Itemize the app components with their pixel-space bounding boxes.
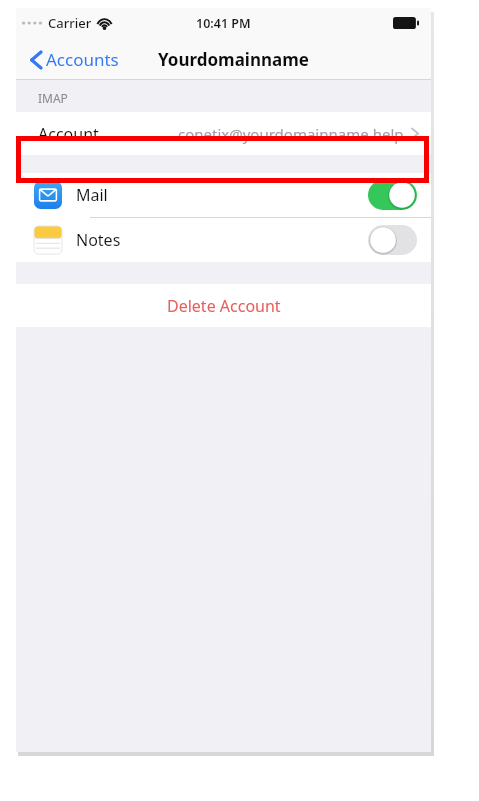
staticText: Account xyxy=(38,123,99,145)
staticText: Notes xyxy=(76,229,121,251)
button[interactable]: On xyxy=(368,180,417,210)
button[interactable]: Notes xyxy=(16,218,431,262)
staticText: IMAP xyxy=(38,90,68,106)
button[interactable]: Accounts xyxy=(26,44,123,75)
staticText: Accounts xyxy=(46,48,119,71)
staticText: conetix@yourdomainname.help xyxy=(178,124,404,144)
staticText: Mail xyxy=(76,184,108,206)
staticText: Delete Account xyxy=(167,295,281,317)
button[interactable]: Delete Account xyxy=(16,284,431,327)
staticText: 10:41 PM xyxy=(196,15,251,32)
staticText: Carrier xyxy=(48,14,92,32)
button[interactable]: Off xyxy=(368,225,417,255)
button[interactable]: Account xyxy=(16,112,431,155)
button[interactable]: Mail xyxy=(16,173,431,217)
staticText: Yourdomainname xyxy=(158,48,309,71)
